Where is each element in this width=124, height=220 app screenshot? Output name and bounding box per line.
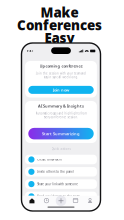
staticText: Send a quick recap to the team bbox=[37, 195, 79, 198]
button[interactable]: Profile bbox=[83, 198, 97, 203]
button[interactable]: Join now bbox=[28, 86, 94, 94]
staticText: Easy bbox=[44, 29, 74, 47]
staticText: Automatic recaps and highlights from bbox=[35, 112, 86, 115]
staticText: 9:41 bbox=[27, 49, 34, 53]
button[interactable]: Create a new event bbox=[25, 155, 97, 164]
button[interactable]: Share your link with someone bbox=[25, 179, 97, 189]
button[interactable]: Invite others to the panel bbox=[25, 167, 97, 176]
staticText: Upcoming conference bbox=[39, 63, 82, 69]
staticText: Join the session with your team and bbox=[36, 72, 86, 75]
staticText: every conference session. bbox=[43, 115, 78, 119]
staticText: stay in sync all week long. bbox=[43, 75, 78, 79]
button[interactable]: Home bbox=[25, 198, 39, 203]
staticText: Share your link with someone bbox=[37, 182, 78, 186]
button[interactable]: Calendar bbox=[68, 198, 83, 203]
staticText: Make bbox=[40, 3, 78, 21]
button[interactable]: Send a quick recap to the team bbox=[25, 192, 97, 201]
button[interactable]: Start Summarizing bbox=[28, 128, 94, 139]
staticText: Quick actions bbox=[51, 147, 70, 151]
staticText: Join now bbox=[53, 87, 69, 92]
button[interactable]: Recents bbox=[39, 198, 54, 203]
staticText: Start Summarizing bbox=[42, 131, 80, 136]
staticText: Invite others to the panel bbox=[37, 170, 74, 173]
button[interactable]: New bbox=[54, 195, 68, 206]
staticText: AI Summary & Insights bbox=[38, 103, 84, 109]
staticText: Conferences bbox=[17, 16, 102, 34]
staticText: Create a new event bbox=[37, 158, 62, 161]
